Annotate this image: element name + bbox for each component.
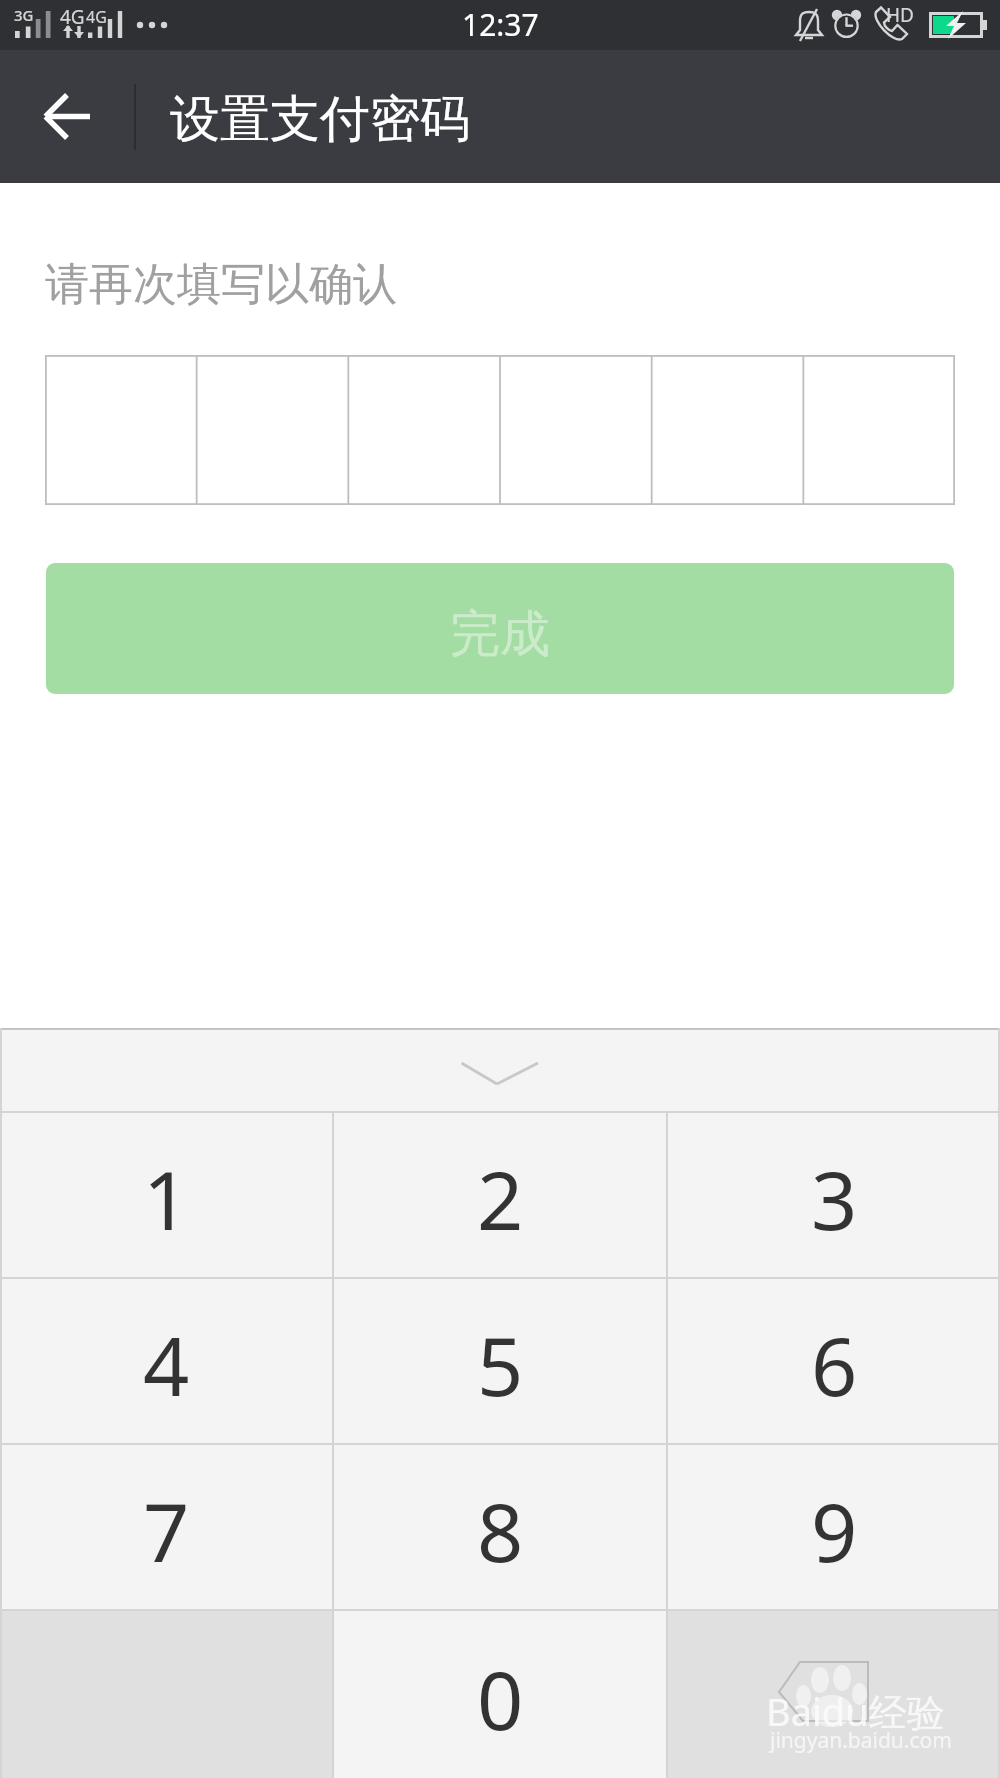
staticText: 2 [477,1143,524,1253]
button[interactable]: 2 [334,1113,666,1277]
button[interactable]: 9 [668,1445,1000,1609]
staticText: 请再次填写以确认 [45,257,397,312]
staticText: 7 [143,1475,190,1585]
staticText: 8 [477,1475,524,1585]
staticText: Baidu经验 [766,1685,945,1737]
staticText: 4G [86,6,107,28]
staticText: 9 [811,1475,858,1585]
button[interactable]: 完成 [46,563,954,694]
button[interactable]: 3 [668,1113,1000,1277]
staticText: HD [886,2,914,28]
staticText: 12:37 [462,4,539,45]
staticText: 完成 [450,603,550,666]
staticText: 4G [60,4,85,30]
button[interactable]: 4 [0,1279,332,1443]
staticText: 3G [14,5,34,25]
staticText: 设置支付密码 [170,88,470,151]
button[interactable]: 8 [334,1445,666,1609]
button[interactable]: 7 [0,1445,332,1609]
button[interactable]: Back [0,50,132,183]
button[interactable]: Delete [668,1611,1000,1778]
button[interactable]: 1 [0,1113,332,1277]
button[interactable] [45,355,955,505]
staticText: 3 [811,1143,858,1253]
button[interactable]: 0 [334,1611,666,1778]
staticText: 0 [477,1643,524,1753]
staticText: 6 [811,1309,858,1419]
staticText: 4 [143,1309,190,1419]
button[interactable]: 5 [334,1279,666,1443]
button[interactable]: 6 [668,1279,1000,1443]
staticText: 1 [143,1143,190,1253]
staticText: 5 [477,1309,524,1419]
staticText: jingyan.baidu.com [770,1726,952,1755]
button[interactable]: Hide keyboard [0,1030,1000,1111]
